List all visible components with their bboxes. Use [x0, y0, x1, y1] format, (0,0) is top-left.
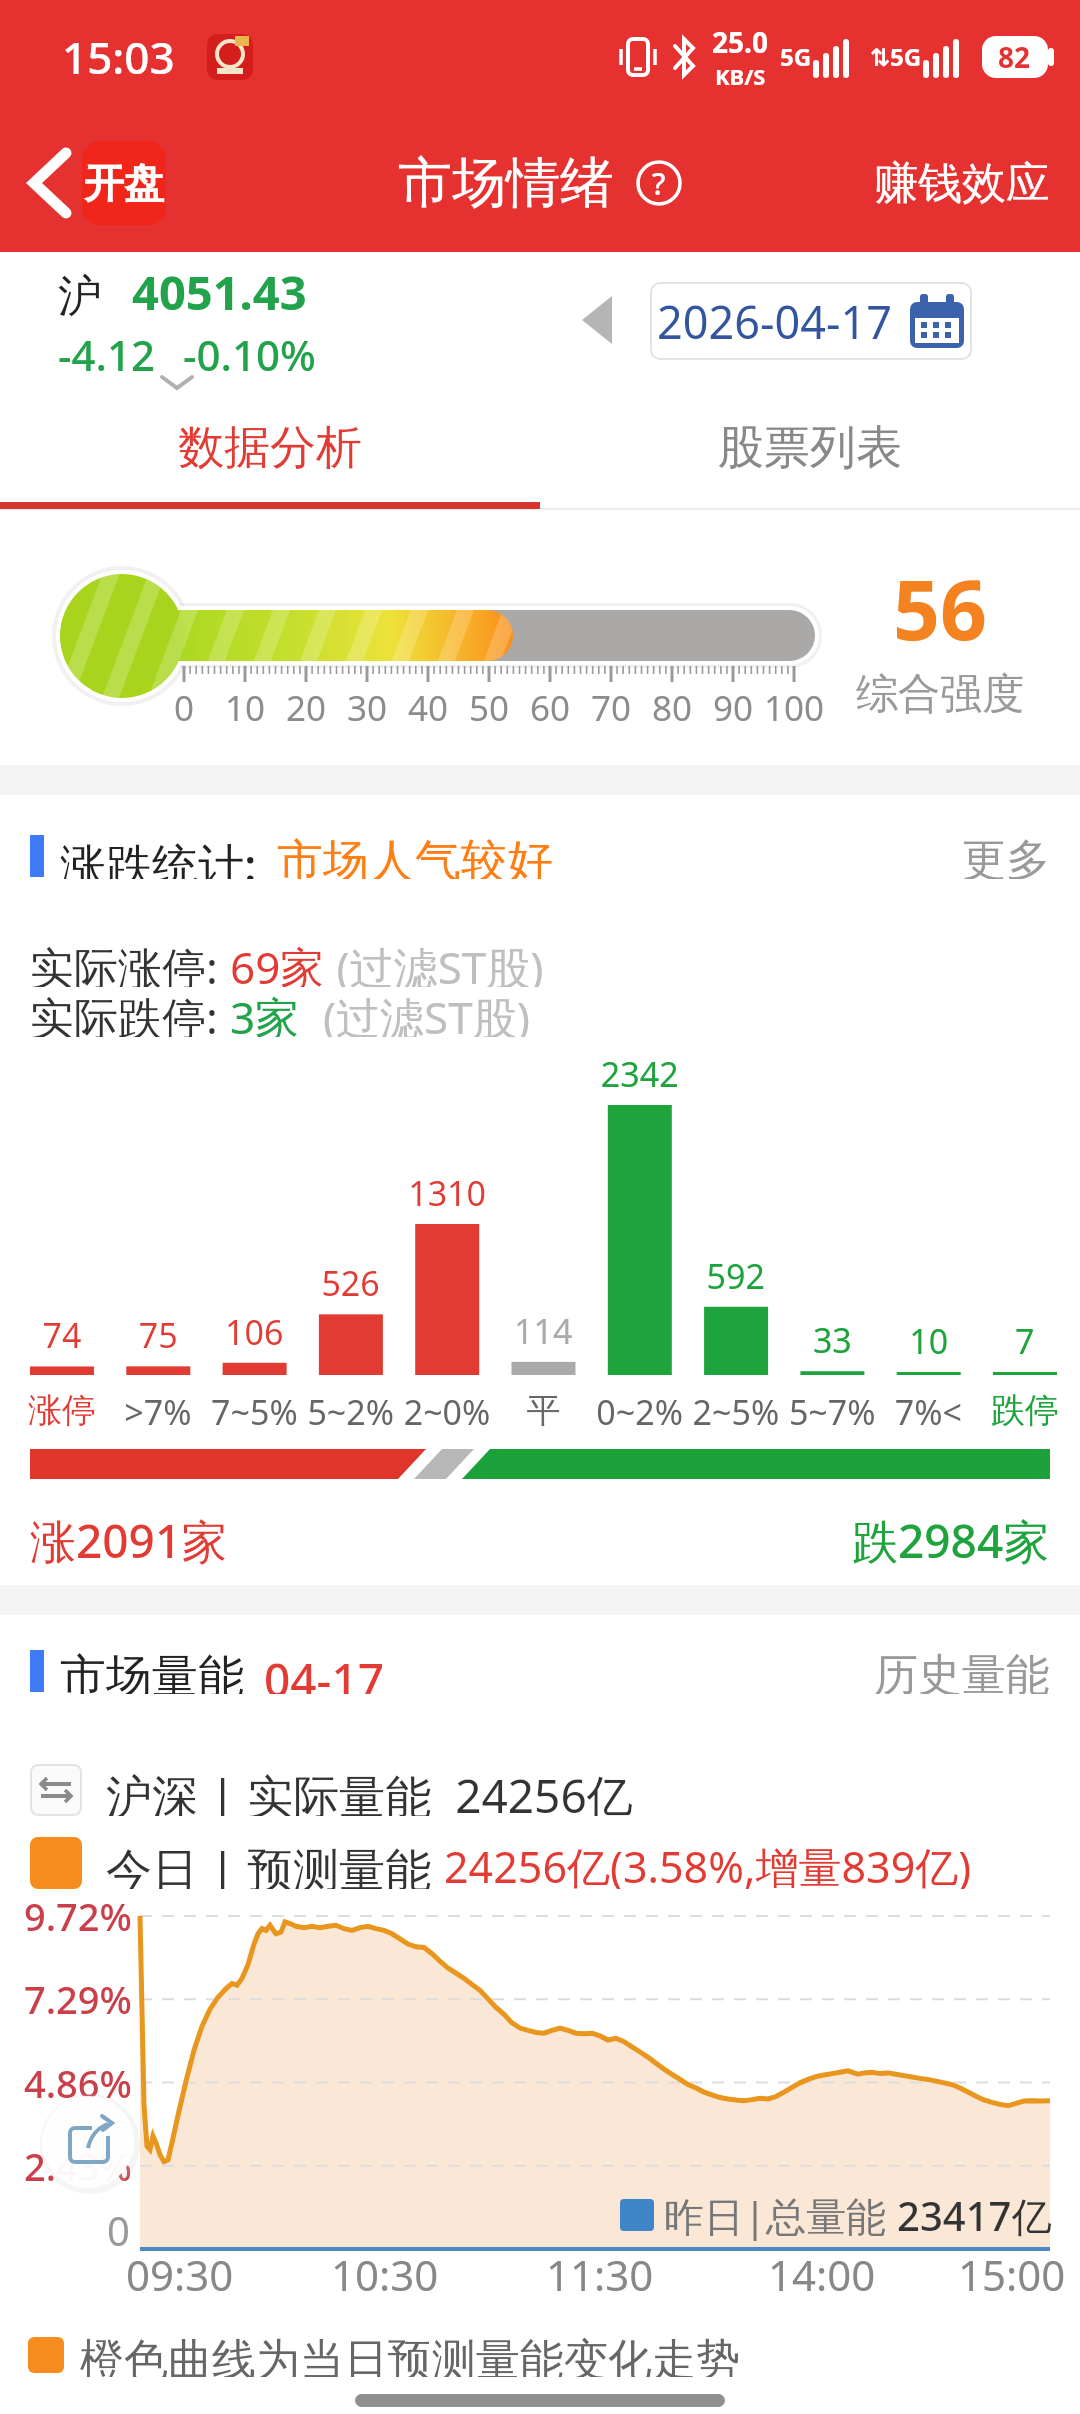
staticText: 实际涨停: — [30, 937, 230, 987]
button[interactable]: 赚钱效应 — [874, 156, 1050, 211]
staticText: 04-17 — [264, 1648, 385, 1694]
staticText: 4051.43 — [132, 260, 307, 324]
staticText: ⇅5G — [870, 40, 922, 73]
staticText: 市场量能 — [60, 1648, 244, 1694]
staticText: 60 — [530, 684, 571, 732]
staticText: 市场情绪 — [398, 149, 614, 217]
button[interactable]: 更多 — [962, 833, 1050, 879]
staticText: 跌2984家 — [852, 1509, 1050, 1565]
staticText: 69家 — [230, 937, 325, 987]
staticText: 56 — [893, 552, 987, 664]
staticText: 25.0 — [712, 23, 768, 61]
staticText: 5G — [780, 40, 812, 73]
staticText: 数据分析 — [178, 419, 362, 477]
button[interactable]: ? — [636, 160, 682, 206]
staticText: 股票列表 — [718, 419, 902, 477]
staticText: 15:03 — [62, 27, 175, 87]
staticText: (过滤ST股) — [300, 987, 530, 1037]
staticText: 沪深 | 实际量能 24256亿 — [106, 1764, 633, 1816]
staticText: 综合强度 — [856, 668, 1024, 721]
staticText: 70 — [591, 684, 632, 732]
staticText: 3家 — [230, 987, 300, 1037]
staticText: 橙色曲线为当日预测量能变化走势 — [80, 2333, 740, 2377]
staticText: 50 — [469, 684, 510, 732]
button[interactable]: 股票列表 — [540, 395, 1080, 501]
staticText: -4.12 — [58, 326, 155, 383]
staticText: 开盘 — [84, 158, 164, 208]
staticText: 涨跌统计: — [60, 833, 257, 879]
staticText: 10 — [225, 684, 266, 732]
staticText: 82 — [998, 38, 1031, 76]
staticText: 更多 — [962, 833, 1050, 879]
staticText: -0.10% — [183, 326, 316, 383]
staticText: 今日 | 预测量能 — [106, 1837, 444, 1889]
staticText: 市场人气较好 — [277, 833, 553, 879]
staticText: 30 — [347, 684, 388, 732]
staticText: 赚钱效应 — [874, 156, 1050, 211]
staticText: 沪 — [58, 269, 102, 324]
staticText: 40 — [408, 684, 449, 732]
button[interactable]: 历史量能 — [874, 1648, 1050, 1694]
staticText: KB/S — [715, 61, 766, 91]
staticText: 80 — [652, 684, 693, 732]
staticText: 90 — [713, 684, 754, 732]
staticText: (过滤ST股) — [325, 937, 544, 987]
button[interactable]: 2026-04-17 — [650, 282, 972, 360]
staticText: ? — [652, 163, 666, 204]
staticText: 实际跌停: — [30, 987, 230, 1037]
button[interactable]: 数据分析 — [0, 395, 540, 501]
staticText: 20 — [286, 684, 327, 732]
staticText: 涨2091家 — [30, 1509, 228, 1565]
button[interactable]: 开盘 — [26, 141, 166, 225]
staticText: 0 — [174, 684, 195, 732]
staticText: 24256亿(3.58%,增量839亿) — [444, 1837, 972, 1889]
staticText: 100 — [764, 684, 825, 732]
staticText: 2026-04-17 — [657, 291, 892, 352]
staticText: 历史量能 — [874, 1648, 1050, 1694]
